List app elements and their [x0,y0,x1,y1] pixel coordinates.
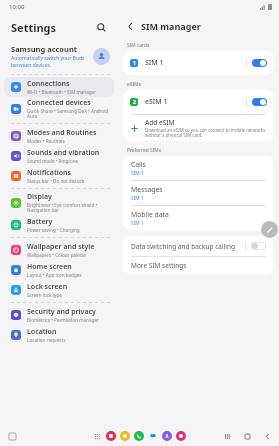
staticText: More SIM settings [131,261,187,270]
button[interactable]: Notifications [4,166,114,186]
button[interactable]: Wallpaper and style [4,240,114,260]
button[interactable]: Toggle on [252,98,267,106]
button[interactable]: Home screen [4,260,114,280]
staticText: Preferred SIMs [127,147,162,154]
staticText: Quick Share • Samsung DeX • Android Auto [27,108,110,120]
staticText: Location requests [27,337,66,343]
button[interactable]: Connected devices [4,97,114,121]
button[interactable]: Apps [93,432,102,441]
staticText: Sound mode • Ringtone [27,158,79,164]
staticText: Mobile data [131,210,169,219]
staticText: Security and privacy [27,307,96,317]
button[interactable]: gallery [176,431,186,441]
staticText: Power saving • Charging [27,227,80,233]
button[interactable]: Sounds and vibration [4,146,114,166]
staticText: Automatically switch your Buds between d… [11,55,85,69]
staticText: SIM 1 [131,170,144,177]
button[interactable]: Back [122,18,138,34]
staticText: eSIM 1 [145,97,246,107]
button[interactable]: Lock screen [4,280,114,300]
staticText: eSIMs [127,81,141,88]
button[interactable]: cam [106,431,116,441]
button[interactable]: Back [263,432,272,441]
staticText: Brightness • Eye comfort shield • Naviga… [27,202,110,214]
staticText: Add eSIM [145,118,175,127]
staticText: Settings [11,20,57,35]
staticText: Layout • App icon badges [27,272,82,278]
staticText: 1 [133,60,136,67]
staticText: Wi-Fi • Bluetooth • SIM manager [27,89,97,95]
staticText: SIM 1 [131,220,144,227]
button[interactable]: contact [162,431,172,441]
button[interactable]: 2 [123,90,274,114]
button[interactable]: Messages [123,181,274,205]
button[interactable]: Recents [223,432,232,441]
button[interactable]: Search [93,19,109,35]
staticText: Download an eSIM so you can connect to m… [145,127,266,139]
button[interactable]: Screen recorder [7,431,17,441]
button[interactable]: 1 [123,51,274,75]
staticText: SIM 1 [131,195,144,202]
staticText: Connected devices [27,98,91,108]
staticText: Modes and Routines [27,128,97,138]
button[interactable]: Home [243,432,252,441]
staticText: Calls [131,160,146,169]
button[interactable]: Edit [261,221,278,238]
staticText: Connections [27,79,70,89]
button[interactable]: Toggle on [252,59,267,67]
button[interactable]: Mobile data [123,206,274,230]
button[interactable]: msg [148,431,158,441]
button[interactable]: Samsung account [0,40,118,72]
staticText: Modes • Routines [27,138,65,144]
button[interactable]: Display [4,191,114,215]
button[interactable]: folder [120,431,130,441]
staticText: Biometrics • Permission manager [27,317,99,323]
staticText: SIM 1 [145,58,246,68]
staticText: Messages [131,185,163,194]
button[interactable]: Data switching and backup calling [123,236,274,256]
button[interactable]: More SIM settings [123,257,274,274]
staticText: SIM cards [127,42,150,49]
staticText: Lock screen [27,282,68,292]
staticText: Samsung account [11,44,78,54]
staticText: Wallpaper and style [27,242,95,252]
staticText: Home screen [27,262,72,272]
button[interactable]: Add eSIM [123,115,274,141]
button[interactable]: Security and privacy [4,305,114,325]
staticText: Display [27,192,52,202]
button[interactable]: Battery [4,215,114,235]
staticText: 2 [133,99,136,106]
staticText: Screen lock type [27,292,62,298]
button[interactable]: phone [134,431,144,441]
staticText: Notifications [27,168,71,178]
button[interactable]: Modes and Routines [4,126,114,146]
staticText: Wallpapers • Colour palette [27,252,86,258]
button[interactable]: Toggle off [251,242,266,250]
staticText: Battery [27,217,53,227]
staticText: 10:00 [9,3,25,11]
staticText: Sounds and vibration [27,148,100,158]
button[interactable]: Connections [4,77,114,97]
button[interactable]: Calls [123,156,274,180]
staticText: Location [27,327,57,337]
staticText: Status bar • Do not disturb [27,178,85,184]
staticText: Data switching and backup calling [131,242,245,251]
staticText: SIM manager [141,20,201,32]
button[interactable]: Location [4,325,114,345]
